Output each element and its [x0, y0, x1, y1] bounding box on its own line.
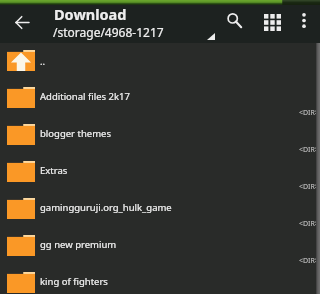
staticText: <DIR> [299, 145, 319, 155]
staticText: Download [54, 4, 127, 24]
button[interactable]: Additional files 2k17 [0, 80, 320, 117]
staticText: gg new premium [40, 238, 117, 251]
button[interactable]: king of fighters [0, 265, 320, 294]
staticText: king of fighters [40, 275, 108, 288]
button[interactable]: Back [0, 0, 44, 43]
button[interactable]: More options [294, 8, 314, 32]
button[interactable]: Extras [0, 154, 320, 191]
button[interactable]: blogger themes [0, 117, 320, 154]
staticText: Additional files 2k17 [40, 90, 130, 103]
button[interactable]: Search [222, 8, 246, 32]
staticText: <DIR> [299, 256, 319, 266]
staticText: <DIR> [299, 108, 319, 118]
staticText: /storage/4968-1217 [53, 24, 164, 40]
button[interactable]: Grid view [260, 8, 284, 32]
staticText: blogger themes [40, 127, 111, 140]
staticText: Extras [40, 164, 68, 177]
staticText: <DIR> [299, 219, 319, 229]
staticText: .. [40, 55, 46, 68]
button[interactable]: .. [0, 43, 320, 80]
button[interactable]: gg new premium [0, 228, 320, 265]
staticText: gamingguruji.org_hulk_game [40, 201, 172, 214]
staticText: <DIR> [299, 293, 319, 294]
button[interactable]: gamingguruji.org_hulk_game [0, 191, 320, 228]
staticText: <DIR> [299, 182, 319, 192]
